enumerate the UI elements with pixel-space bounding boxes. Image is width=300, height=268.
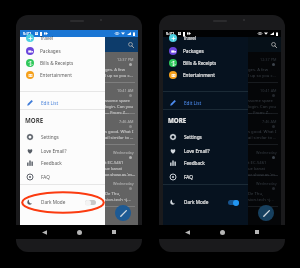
- staticText: Dark Mode: [41, 199, 66, 205]
- staticText: sion.tech <j...: [248, 197, 274, 203]
- staticText: 5:71: [23, 31, 32, 37]
- button[interactable]: Compose: [115, 205, 131, 221]
- staticText: 7:46 AM: [262, 119, 277, 124]
- button[interactable]: Settings: [163, 130, 248, 143]
- button[interactable]: Edit List: [163, 96, 248, 110]
- staticText: Love Email?: [184, 148, 210, 154]
- staticText: Feedback: [184, 160, 205, 166]
- staticText: Wednesday: [256, 181, 277, 186]
- button[interactable]: Love Email?: [163, 144, 248, 157]
- staticText: Bills & Receipts: [40, 60, 74, 66]
- button[interactable]: Feedback: [20, 156, 105, 169]
- staticText: ail similar to ...: [105, 135, 134, 141]
- staticText: Wednesday: [113, 181, 134, 186]
- staticText: ges. A few: [248, 67, 268, 73]
- staticText: 7:46 AM: [119, 119, 134, 124]
- staticText: s good. What I: [248, 129, 277, 135]
- staticText: or show as 'm...: [105, 172, 136, 176]
- staticText: Wednesday: [113, 150, 134, 155]
- button[interactable]: Bills & Receipts: [163, 57, 248, 69]
- button[interactable]: Compose: [258, 205, 274, 221]
- staticText: De Thu,: [248, 191, 264, 197]
- button[interactable]: Bills & Receipts: [20, 57, 105, 69]
- staticText: Settings: [41, 134, 59, 140]
- staticText: FAQ: [41, 174, 50, 180]
- button[interactable]: Love Email?: [20, 144, 105, 157]
- staticText: ssome spare: [248, 98, 273, 104]
- staticText: Edit List: [41, 100, 59, 106]
- button[interactable]: Packages: [20, 45, 105, 57]
- staticText: Entertainment: [40, 72, 72, 78]
- staticText: l up so you c...: [248, 73, 276, 79]
- staticText: — From: Z...: [105, 110, 129, 114]
- button[interactable]: Entertainment: [163, 69, 248, 81]
- button[interactable]: Home: [215, 225, 229, 239]
- staticText: Love Email?: [41, 148, 67, 154]
- button[interactable]: Entertainment: [20, 69, 105, 81]
- staticText: Feedback: [41, 160, 62, 166]
- staticText: 10:41 AM: [117, 88, 134, 93]
- staticText: ail similar to ...: [248, 135, 277, 141]
- staticText: Entertainment: [183, 72, 215, 78]
- staticText: MORE: [168, 116, 187, 124]
- staticText: ges. A few: [105, 67, 125, 73]
- button[interactable]: Settings: [20, 130, 105, 143]
- staticText: 12:37 PM: [117, 57, 134, 62]
- staticText: Travel: [183, 35, 197, 41]
- staticText: 10:41 AM: [260, 88, 277, 93]
- button[interactable]: Back: [180, 225, 194, 239]
- button[interactable]: Travel: [20, 32, 105, 44]
- staticText: Dark Mode: [184, 199, 209, 205]
- staticText: ue kanat: [105, 166, 123, 172]
- button[interactable]: Dark Mode: [20, 195, 105, 209]
- button[interactable]: Dark Mode: [163, 195, 248, 209]
- staticText: login. Can you: [105, 104, 133, 110]
- staticText: ssome spare: [105, 98, 130, 104]
- button[interactable]: Home: [72, 225, 86, 239]
- staticText: sion.tech <j...: [105, 197, 131, 203]
- staticText: FAQ: [184, 174, 193, 180]
- button[interactable]: Travel: [163, 32, 248, 44]
- staticText: t EC-5461: [248, 160, 267, 166]
- staticText: Edit List: [184, 100, 202, 106]
- staticText: Packages: [40, 48, 61, 54]
- staticText: Wednesday: [256, 150, 277, 155]
- staticText: Bills & Receipts: [183, 60, 217, 66]
- button[interactable]: FAQ: [163, 170, 248, 183]
- staticText: De Thu,: [105, 191, 121, 197]
- button[interactable]: Search: [269, 40, 278, 49]
- button[interactable]: Packages: [163, 45, 248, 57]
- button[interactable]: Search: [126, 40, 135, 49]
- staticText: or show as 'm...: [248, 172, 279, 176]
- staticText: login. Can you: [248, 104, 276, 110]
- staticText: 12:37 PM: [260, 57, 277, 62]
- staticText: — From: Z...: [248, 110, 272, 114]
- staticText: Travel: [40, 35, 54, 41]
- staticText: 5:71: [166, 31, 175, 37]
- staticText: t EC-5461: [105, 160, 124, 166]
- button[interactable]: FAQ: [20, 170, 105, 183]
- staticText: l up so you c...: [105, 73, 133, 79]
- staticText: s good. What I: [105, 129, 134, 135]
- staticText: ue kanat: [248, 166, 266, 172]
- button[interactable]: Recents: [107, 225, 121, 239]
- button[interactable]: Back: [37, 225, 51, 239]
- staticText: Packages: [183, 48, 204, 54]
- staticText: Settings: [184, 134, 202, 140]
- button[interactable]: Feedback: [163, 156, 248, 169]
- button[interactable]: Recents: [250, 225, 264, 239]
- button[interactable]: Edit List: [20, 96, 105, 110]
- staticText: MORE: [25, 116, 44, 124]
